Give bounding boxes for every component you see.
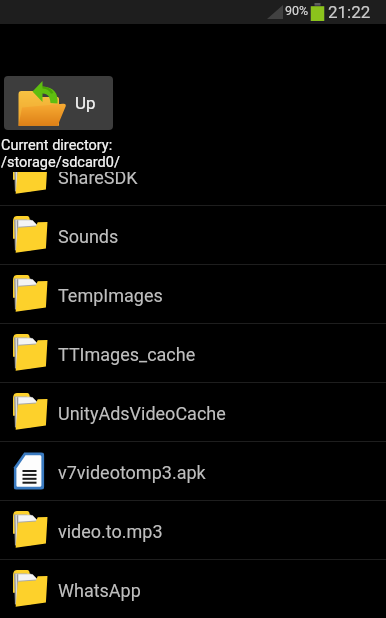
button[interactable]: WhatsApp (0, 560, 386, 618)
staticText: 21:22 (328, 2, 371, 22)
button[interactable]: Up (4, 76, 113, 130)
button[interactable]: TempImages (0, 265, 386, 323)
staticText: Current directory: (1, 137, 113, 154)
staticText: /storage/sdcard0/ (1, 154, 120, 171)
staticText: Sounds (58, 226, 119, 247)
staticText: v7videotomp3.apk (58, 462, 206, 483)
staticText: video.to.mp3 (58, 521, 163, 542)
button[interactable]: TTImages_cache (0, 324, 386, 382)
button[interactable]: UnityAdsVideoCache (0, 383, 386, 441)
staticText: ShareSDK (58, 167, 138, 188)
staticText: TempImages (58, 285, 163, 306)
staticText: TTImages_cache (58, 344, 196, 365)
staticText: 90% (285, 3, 309, 18)
staticText: Up (75, 93, 96, 113)
button[interactable]: Sounds (0, 206, 386, 264)
button[interactable]: v7videotomp3.apk (0, 442, 386, 500)
staticText: UnityAdsVideoCache (58, 403, 226, 424)
button[interactable]: ShareSDK (0, 147, 386, 205)
button[interactable]: video.to.mp3 (0, 501, 386, 559)
staticText: WhatsApp (58, 580, 141, 601)
